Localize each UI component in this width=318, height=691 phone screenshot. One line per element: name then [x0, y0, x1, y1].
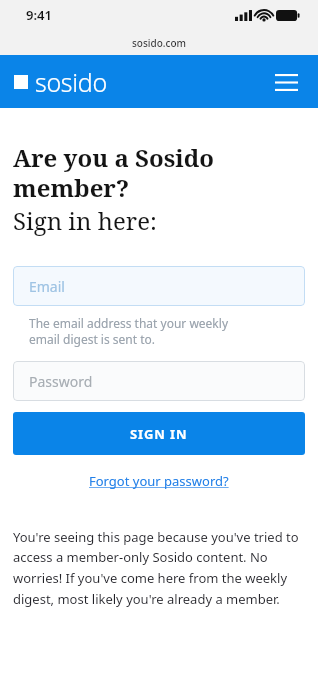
staticText: You're seeing this page because you've t…	[13, 528, 300, 608]
staticText: The email address that your weekly email…	[29, 315, 228, 348]
button[interactable]: Email	[13, 266, 305, 306]
staticText: 9:41	[26, 6, 52, 24]
staticText: Sign in here:	[13, 204, 157, 237]
staticText: sosido.com	[132, 36, 187, 50]
staticText: Password	[29, 372, 93, 391]
button[interactable]: SIGN IN	[13, 412, 305, 455]
button[interactable]: Password	[13, 361, 305, 401]
button[interactable]: Open menu	[264, 60, 308, 104]
staticText: SIGN IN	[130, 425, 188, 443]
staticText: Are you a Sosido member?	[13, 141, 215, 204]
staticText: Forgot your password?	[89, 472, 229, 490]
staticText: Email	[29, 277, 65, 296]
button[interactable]: Forgot your password?	[83, 469, 235, 493]
staticText: sosido	[35, 65, 107, 99]
